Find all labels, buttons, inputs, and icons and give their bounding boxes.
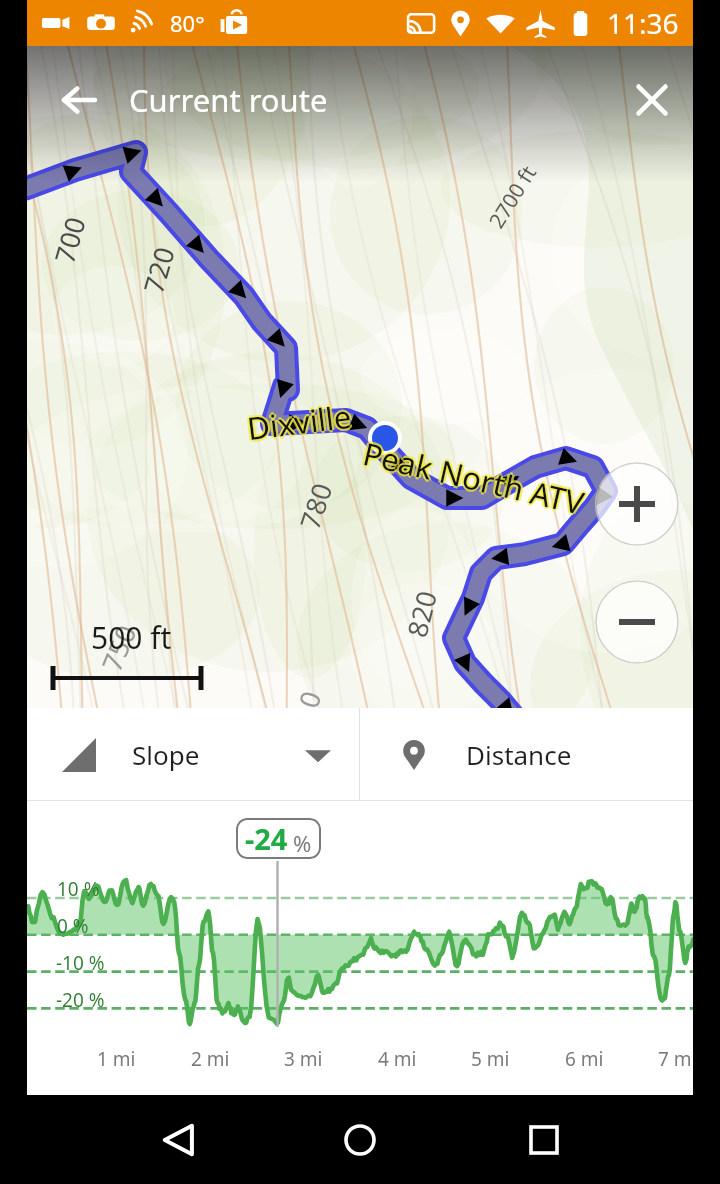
staticText: Dixville xyxy=(245,393,354,447)
staticText: 820 xyxy=(398,586,445,641)
staticText: Dixville xyxy=(247,394,356,449)
staticText: 2700 ft xyxy=(482,160,543,234)
staticText: Peak North ATV xyxy=(359,434,588,526)
button[interactable]: Close xyxy=(616,64,688,136)
button[interactable]: Zoom in xyxy=(595,462,679,546)
staticText: 720 xyxy=(134,242,183,297)
staticText: 2 mi xyxy=(191,1046,230,1072)
button[interactable]: Zoom out xyxy=(595,580,679,664)
staticText: Peak North ATV xyxy=(361,433,591,524)
staticText: 500 ft xyxy=(91,617,172,658)
staticText: 3 mi xyxy=(284,1046,323,1072)
button[interactable]: Recents xyxy=(510,1106,578,1174)
staticText: 6 mi xyxy=(565,1046,604,1072)
staticText: -10 % xyxy=(56,950,105,976)
staticText: Current route xyxy=(129,79,328,121)
button[interactable]: Slope xyxy=(27,708,359,801)
staticText: 1 mi xyxy=(97,1046,136,1072)
staticText: 0 xyxy=(289,686,329,708)
button[interactable]: Home xyxy=(326,1106,394,1174)
staticText: Dixville xyxy=(245,397,354,451)
staticText: 780 xyxy=(291,478,340,534)
button[interactable]: Back xyxy=(145,1106,213,1174)
staticText: % xyxy=(293,828,312,858)
button[interactable]: Distance xyxy=(360,708,693,801)
staticText: Peak North ATV xyxy=(357,432,587,523)
staticText: 700 xyxy=(45,212,94,267)
staticText: 11:36 xyxy=(607,4,679,42)
staticText: -24 xyxy=(245,819,288,858)
staticText: -20 % xyxy=(56,987,105,1013)
staticText: 7 mi xyxy=(658,1046,693,1072)
staticText: Dixville xyxy=(245,395,354,449)
button[interactable]: Back xyxy=(43,64,115,136)
staticText: 80° xyxy=(170,8,205,38)
staticText: Peak North ATV xyxy=(360,430,589,522)
staticText: 4 mi xyxy=(378,1046,417,1072)
staticText: 5 mi xyxy=(471,1046,510,1072)
staticText: Slope xyxy=(132,737,200,772)
staticText: 750 xyxy=(93,619,145,676)
staticText: Distance xyxy=(466,737,572,772)
staticText: Dixville xyxy=(243,395,352,449)
staticText: Peak North ATV xyxy=(359,432,589,524)
staticText: 0 % xyxy=(57,913,89,939)
staticText: 10 % xyxy=(57,876,100,902)
